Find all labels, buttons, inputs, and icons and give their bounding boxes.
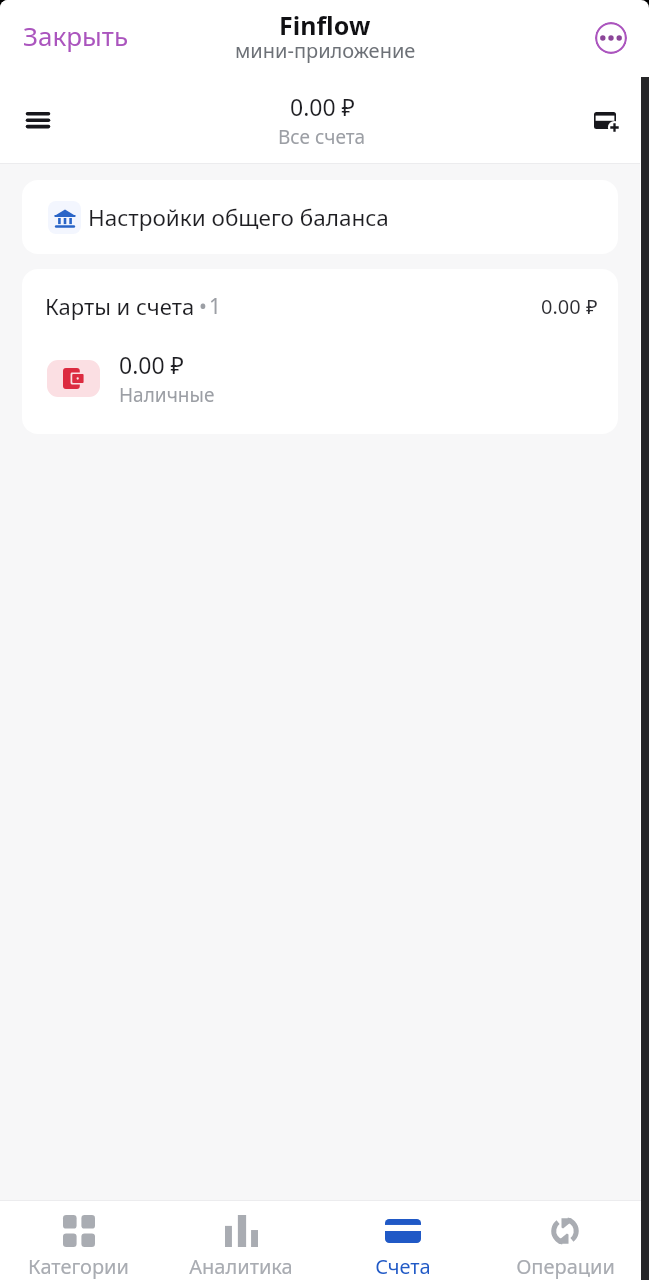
staticText: Счета	[375, 1253, 431, 1280]
staticText: Настройки общего баланса	[88, 202, 389, 233]
staticText: 0.00 ₽	[119, 349, 184, 380]
button[interactable]: Счета	[322, 1200, 484, 1280]
staticText: Аналитика	[189, 1253, 293, 1280]
staticText: 0.00 ₽	[290, 91, 355, 122]
button[interactable]: Аналитика	[160, 1200, 322, 1280]
staticText: Категории	[28, 1253, 129, 1280]
staticText: •	[199, 292, 207, 321]
staticText: Операции	[516, 1253, 615, 1280]
staticText: 0.00 ₽	[541, 293, 598, 320]
button[interactable]: Настройки общего баланса	[22, 180, 618, 254]
button[interactable]: Menu	[14, 96, 62, 144]
button[interactable]: 0.00 ₽	[22, 321, 618, 408]
button[interactable]: Операции	[484, 1200, 646, 1280]
button[interactable]: Карты и счета	[22, 269, 618, 321]
button[interactable]: Add card	[581, 96, 629, 144]
staticText: Все счета	[278, 124, 366, 150]
staticText: Наличные	[119, 382, 215, 408]
staticText: 1	[209, 292, 222, 321]
button[interactable]: Закрыть	[21, 16, 131, 55]
staticText: мини-приложение	[235, 37, 416, 64]
button[interactable]: Категории	[0, 1200, 160, 1280]
staticText: Карты и счета	[45, 291, 195, 321]
button[interactable]: More options	[595, 22, 627, 54]
staticText: Finflow	[279, 8, 371, 42]
